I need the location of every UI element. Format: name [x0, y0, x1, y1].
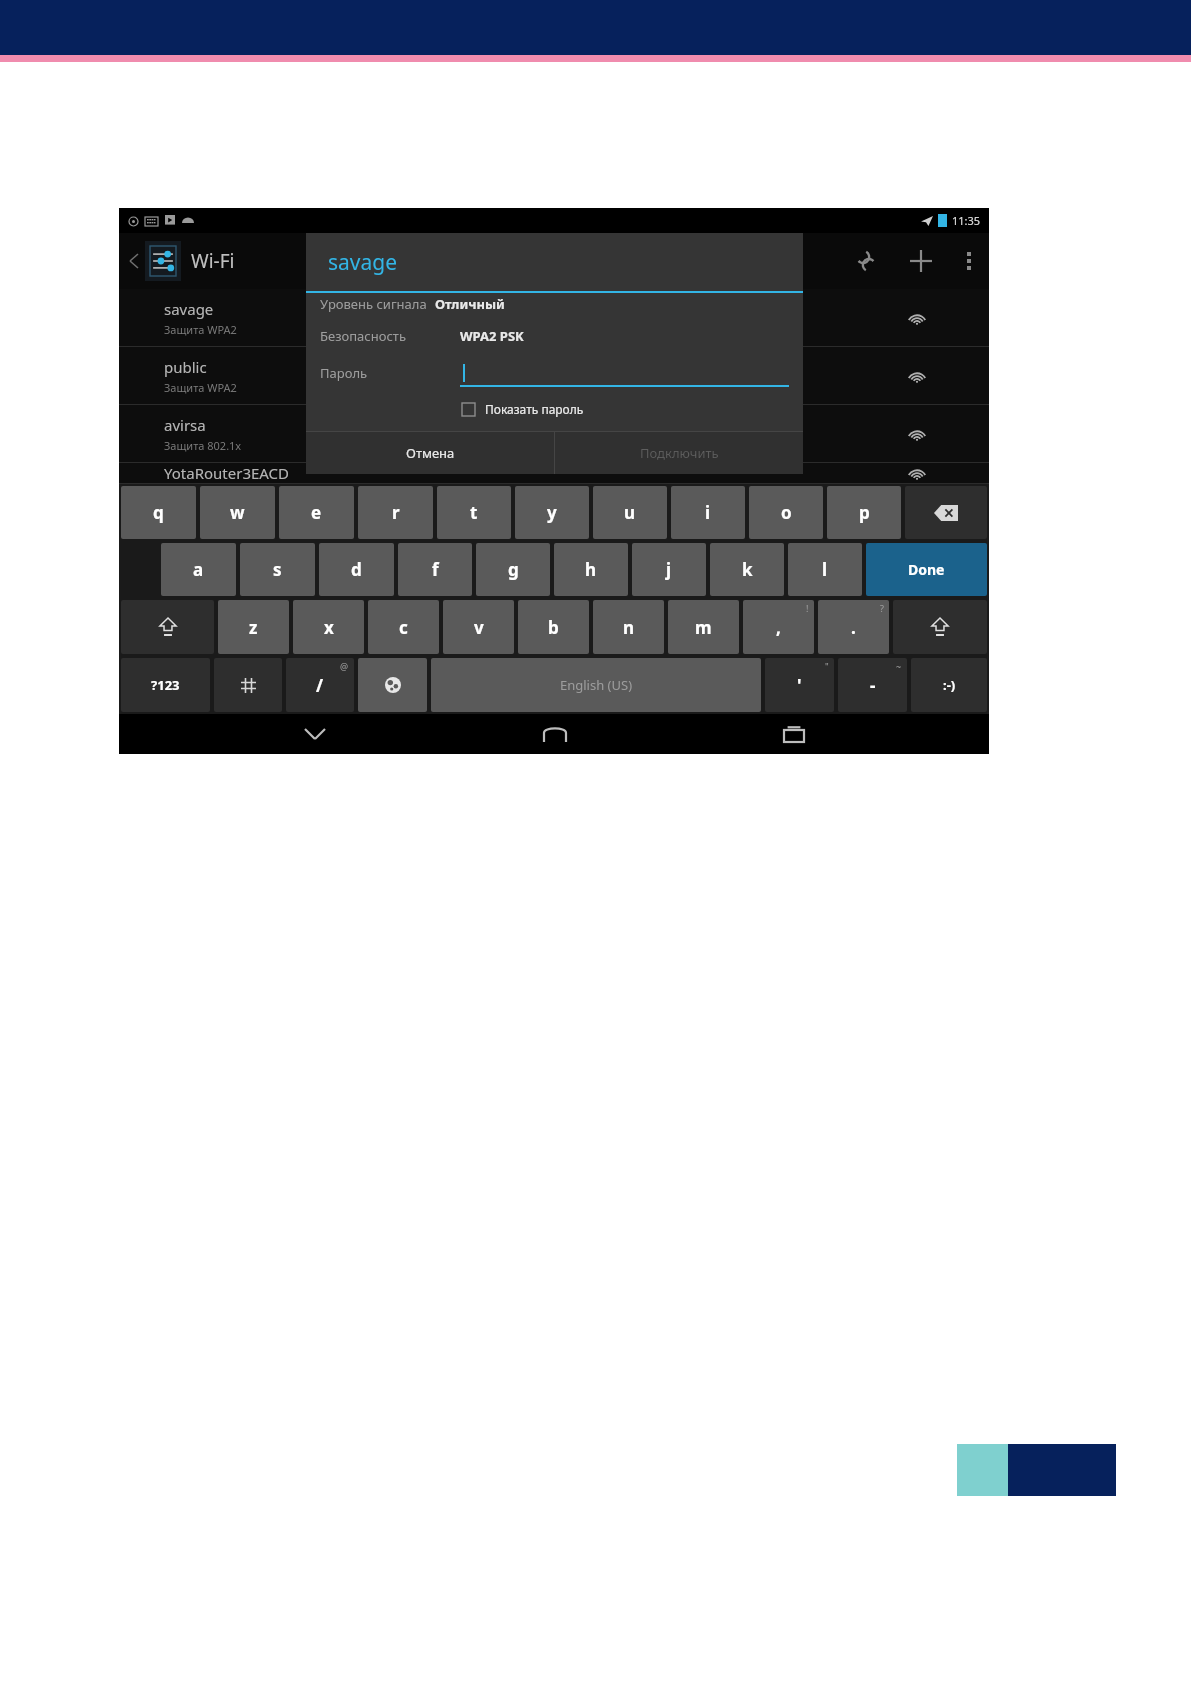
button[interactable]: l: [788, 543, 862, 596]
button[interactable]: y: [515, 486, 589, 539]
staticText: Уровень сигнала: [320, 295, 427, 313]
button[interactable]: English (US): [431, 658, 761, 712]
staticText: public: [164, 357, 207, 377]
button[interactable]: d: [319, 543, 394, 596]
staticText: ': [797, 674, 802, 697]
button[interactable]: c: [368, 600, 439, 654]
button[interactable]: r: [358, 486, 433, 539]
button[interactable]: /: [286, 658, 354, 712]
staticText: -: [870, 674, 876, 697]
button[interactable]: z: [218, 600, 289, 654]
staticText: Защита 802.1x: [164, 438, 242, 453]
staticText: WPA2 PSK: [460, 327, 524, 345]
button[interactable]: More options: [949, 233, 989, 289]
staticText: :-): [943, 676, 956, 694]
staticText: p: [859, 501, 870, 524]
button[interactable]: :-): [911, 658, 987, 712]
button[interactable]: h: [554, 543, 628, 596]
button[interactable]: ?123: [121, 658, 210, 712]
staticText: s: [273, 558, 282, 581]
staticText: g: [508, 558, 519, 581]
button[interactable]: x: [293, 600, 364, 654]
staticText: b: [548, 616, 559, 639]
button[interactable]: Back: [123, 241, 145, 281]
button[interactable]: t: [437, 486, 511, 539]
button[interactable]: p: [827, 486, 901, 539]
staticText: Подключить: [640, 444, 719, 462]
staticText: o: [781, 501, 792, 524]
button[interactable]: m: [668, 600, 739, 654]
button[interactable]: w: [200, 486, 275, 539]
button[interactable]: v: [443, 600, 514, 654]
button[interactable]: Done: [866, 543, 987, 596]
button[interactable]: YotaRouter3EACD: [119, 463, 989, 484]
button[interactable]: Backspace: [905, 486, 987, 539]
button[interactable]: s: [240, 543, 315, 596]
button[interactable]: i: [671, 486, 745, 539]
staticText: ?123: [151, 676, 180, 694]
button[interactable]: Change language: [358, 658, 427, 712]
staticText: savage: [328, 248, 398, 277]
staticText: !: [806, 602, 809, 614]
button[interactable]: u: [593, 486, 667, 539]
staticText: j: [666, 558, 672, 581]
button[interactable]: Показать пароль: [320, 401, 789, 417]
button[interactable]: b: [518, 600, 589, 654]
button[interactable]: o: [749, 486, 823, 539]
staticText: u: [624, 501, 636, 524]
staticText: v: [474, 616, 484, 639]
staticText: Защита WPA2: [164, 380, 237, 395]
button[interactable]: ,: [743, 600, 814, 654]
staticText: ~: [896, 660, 902, 672]
button[interactable]: a: [161, 543, 236, 596]
staticText: f: [432, 558, 439, 581]
staticText: Показать пароль: [485, 401, 584, 417]
staticText: 11:35: [952, 213, 981, 228]
button[interactable]: k: [710, 543, 784, 596]
button[interactable]: Settings: [214, 658, 282, 712]
button[interactable]: ': [765, 658, 834, 712]
staticText: avirsa: [164, 415, 206, 435]
button[interactable]: Home: [525, 714, 585, 754]
staticText: Wi-Fi: [191, 248, 235, 274]
button[interactable]: q: [121, 486, 196, 539]
staticText: x: [324, 616, 334, 639]
button[interactable]: Hide keyboard: [285, 714, 345, 754]
button[interactable]: Отмена: [306, 432, 554, 474]
button[interactable]: Scan: [839, 233, 893, 289]
button[interactable]: e: [279, 486, 354, 539]
button[interactable]: [460, 359, 789, 387]
staticText: m: [695, 616, 712, 639]
staticText: ?: [880, 602, 884, 614]
button[interactable]: Shift: [893, 600, 987, 654]
button[interactable]: savage: [119, 289, 989, 347]
staticText: Отличный: [435, 295, 505, 313]
button[interactable]: f: [398, 543, 472, 596]
button[interactable]: Shift: [121, 600, 214, 654]
staticText: h: [585, 558, 597, 581]
staticText: w: [230, 501, 245, 524]
staticText: @: [340, 660, 349, 672]
staticText: ": [825, 660, 829, 672]
button[interactable]: -: [838, 658, 907, 712]
staticText: q: [153, 501, 164, 524]
staticText: Пароль: [320, 364, 460, 382]
button[interactable]: g: [476, 543, 550, 596]
button[interactable]: Recent apps: [764, 714, 824, 754]
staticText: ,: [776, 616, 781, 639]
button[interactable]: n: [593, 600, 664, 654]
staticText: i: [705, 501, 711, 524]
button[interactable]: Подключить: [555, 432, 803, 474]
staticText: Done: [908, 560, 945, 579]
staticText: a: [193, 558, 204, 581]
button[interactable]: public: [119, 347, 989, 405]
button[interactable]: avirsa: [119, 405, 989, 463]
staticText: e: [311, 501, 322, 524]
button[interactable]: Add network: [893, 233, 949, 289]
staticText: .: [851, 616, 856, 639]
button[interactable]: .: [818, 600, 889, 654]
staticText: YotaRouter3EACD: [164, 463, 290, 483]
staticText: y: [547, 501, 557, 524]
staticText: /: [316, 674, 324, 697]
button[interactable]: j: [632, 543, 706, 596]
